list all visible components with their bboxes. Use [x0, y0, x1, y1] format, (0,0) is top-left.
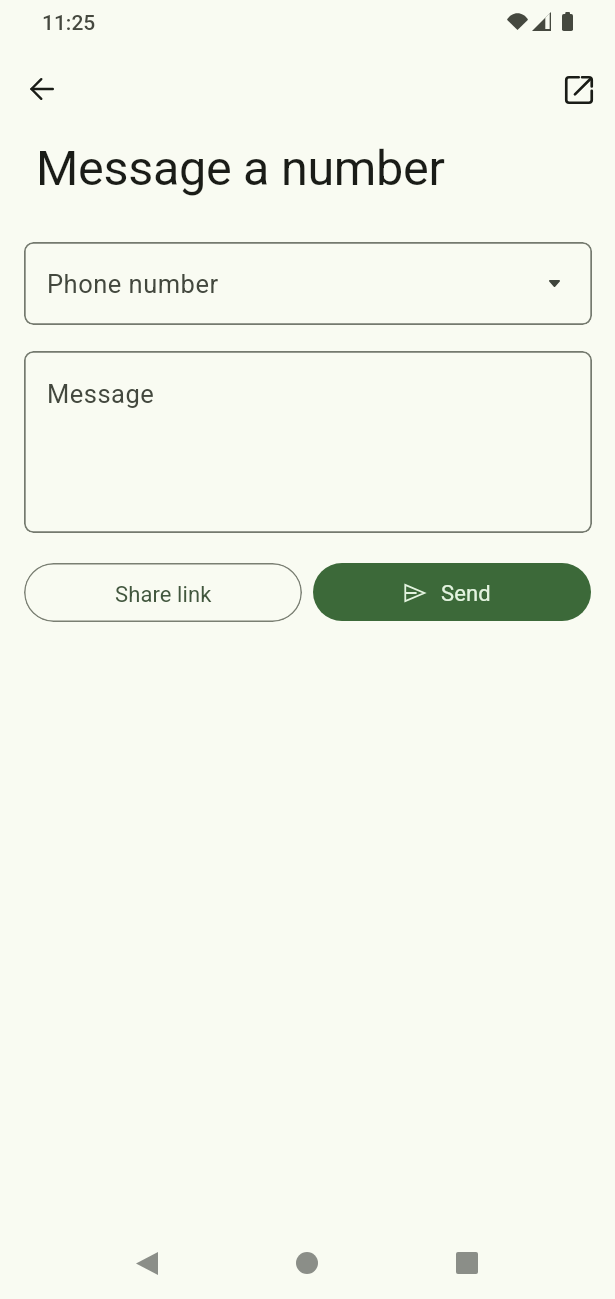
button[interactable]: Share link — [24, 563, 302, 622]
staticText: 11:25 — [42, 11, 96, 36]
button[interactable]: Open in new — [555, 66, 603, 114]
button[interactable]: Phone number — [24, 242, 592, 325]
staticText: Message a number — [36, 140, 445, 197]
staticText: Phone number — [47, 269, 219, 299]
staticText: Share link — [115, 582, 212, 608]
button[interactable]: Send — [313, 563, 591, 621]
button[interactable]: Back — [18, 65, 66, 113]
button[interactable]: Home — [284, 1240, 330, 1286]
button[interactable]: Back — [124, 1240, 170, 1286]
staticText: Send — [441, 581, 491, 607]
staticText: Message — [47, 379, 155, 409]
button[interactable]: Recent apps — [444, 1240, 490, 1286]
button[interactable]: Message — [24, 351, 592, 533]
